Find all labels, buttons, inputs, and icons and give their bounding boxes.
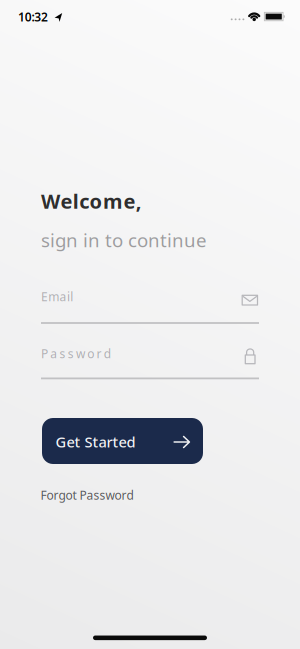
staticText: Password bbox=[41, 346, 111, 362]
staticText: sign in to continue bbox=[41, 228, 207, 252]
button[interactable]: Password bbox=[41, 339, 259, 387]
staticText: Get Started bbox=[55, 432, 135, 451]
staticText: Forgot Password bbox=[40, 487, 133, 503]
button[interactable]: Email bbox=[41, 283, 259, 331]
button[interactable]: Forgot Password bbox=[40, 487, 133, 503]
staticText: Email bbox=[41, 288, 73, 304]
staticText: 10:32 bbox=[18, 9, 48, 25]
staticText: Welcome, bbox=[41, 188, 142, 214]
button[interactable]: Get Started bbox=[42, 418, 203, 464]
